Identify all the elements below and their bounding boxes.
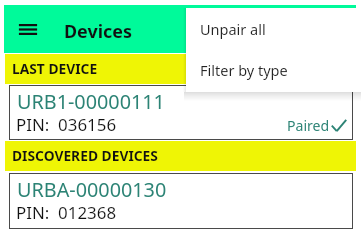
button[interactable]: URB1-00000111 [9, 85, 353, 140]
button[interactable]: Filter by type [186, 59, 361, 81]
staticText: LAST DEVICE [12, 59, 98, 78]
staticText: Devices [64, 19, 132, 43]
staticText: Paired [287, 116, 330, 135]
staticText: DISCOVERED DEVICES [12, 146, 158, 165]
button[interactable]: URBA-00000130 [9, 173, 353, 229]
staticText: Unpair all [200, 19, 266, 39]
staticText: Filter by type [200, 60, 288, 80]
staticText: URBA-00000130 [17, 176, 167, 203]
staticText: PIN: 036156 [16, 113, 117, 136]
staticText: PIN: 012368 [16, 201, 117, 224]
button[interactable]: Unpair all [186, 18, 361, 40]
staticText: URB1-00000111 [17, 88, 165, 115]
button[interactable]: Open navigation menu [8, 5, 48, 53]
